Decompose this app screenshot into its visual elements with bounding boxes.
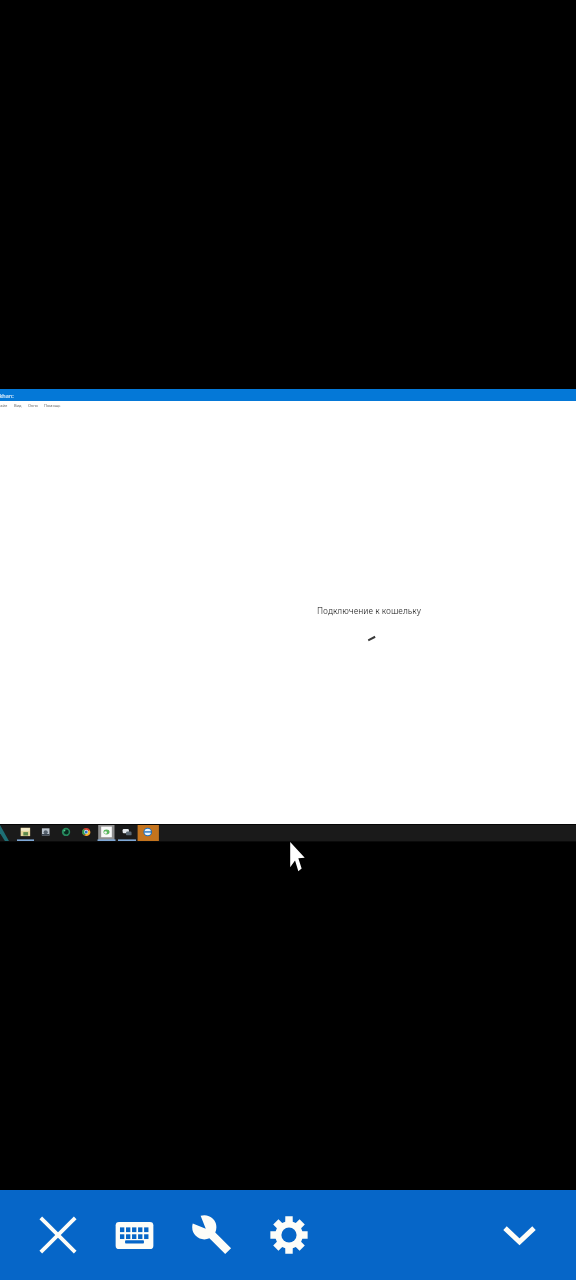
staticText: Подключение к кошельку xyxy=(317,605,421,616)
staticText: Помощь xyxy=(44,403,61,408)
button[interactable]: Файл xyxy=(0,402,10,409)
button[interactable]: Вид xyxy=(12,402,24,409)
button[interactable]: Settings xyxy=(250,1190,327,1280)
staticText: Файл xyxy=(0,403,8,408)
button[interactable]: Окно xyxy=(26,402,40,409)
button[interactable]: Keyboard xyxy=(96,1190,173,1280)
button[interactable]: Помощь xyxy=(42,402,63,409)
button[interactable]: Close xyxy=(19,1190,96,1280)
button[interactable]: Tools xyxy=(173,1190,250,1280)
button[interactable]: Collapse xyxy=(481,1190,558,1280)
staticText: Вид xyxy=(14,403,22,408)
staticText: nkhan: xyxy=(0,392,14,399)
staticText: Окно xyxy=(28,403,38,408)
